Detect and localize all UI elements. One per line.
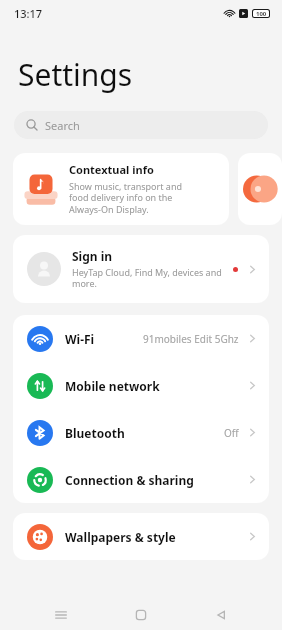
button[interactable]: More suggestions xyxy=(238,153,282,225)
button[interactable]: Wallpapers & style xyxy=(13,513,269,560)
button[interactable]: Bluetooth xyxy=(13,409,269,456)
staticText: 91mobiles Edit 5Ghz xyxy=(143,332,239,346)
staticText: Wallpapers & style xyxy=(65,529,176,545)
staticText: Mobile network xyxy=(65,378,160,394)
staticText: Bluetooth xyxy=(65,425,125,441)
button[interactable]: Back xyxy=(202,600,240,630)
button[interactable]: Sign in xyxy=(13,235,269,303)
button[interactable]: Search xyxy=(14,111,268,139)
button[interactable]: Connection & sharing xyxy=(13,456,269,503)
staticText: Search xyxy=(45,118,80,133)
staticText: 100 xyxy=(256,10,267,17)
staticText: Connection & sharing xyxy=(65,472,194,488)
staticText: Sign in xyxy=(72,248,113,264)
staticText: 13:17 xyxy=(14,6,43,21)
button[interactable]: Home xyxy=(122,600,160,630)
staticText: Off xyxy=(224,426,239,440)
staticText: Show music, transport and food delivery … xyxy=(69,180,183,216)
staticText: Wi-Fi xyxy=(65,331,95,347)
staticText: Settings xyxy=(18,54,133,95)
button[interactable]: Recent apps xyxy=(42,600,80,630)
button[interactable]: Wi-Fi xyxy=(13,315,269,362)
staticText: Contextual info xyxy=(69,162,154,177)
button[interactable]: Contextual info xyxy=(13,153,229,225)
staticText: HeyTap Cloud, Find My, devices and more. xyxy=(72,266,222,290)
button[interactable]: Mobile network xyxy=(13,362,269,409)
